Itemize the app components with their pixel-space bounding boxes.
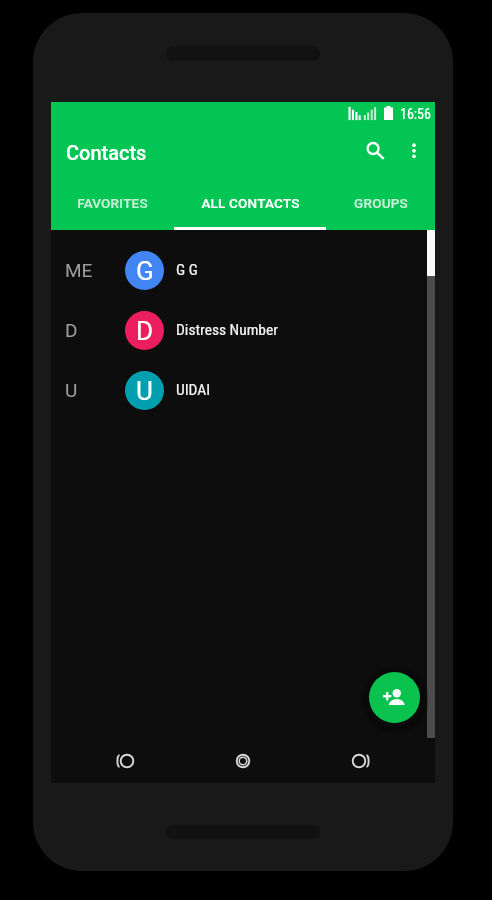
staticText: GROUPS (354, 195, 408, 211)
button[interactable]: Add contact (369, 672, 420, 723)
button[interactable]: D (51, 300, 435, 360)
staticText: UIDAI (176, 381, 211, 399)
button[interactable]: Search (350, 126, 396, 172)
button[interactable]: Back (107, 741, 147, 781)
staticText: U (136, 376, 153, 406)
button[interactable]: GROUPS (326, 182, 435, 230)
staticText: G (136, 256, 154, 286)
staticText: D (136, 316, 154, 346)
staticText: Distress Number (176, 321, 278, 339)
button[interactable]: ALL CONTACTS (174, 182, 326, 230)
button[interactable]: Recents (339, 741, 379, 781)
staticText: Contacts (66, 141, 147, 164)
button[interactable]: Home (223, 741, 263, 781)
button[interactable]: ME (51, 240, 435, 300)
staticText: FAVORITES (77, 195, 148, 211)
staticText: U (65, 379, 78, 401)
staticText: G G (176, 261, 198, 279)
button[interactable]: U (51, 360, 435, 420)
staticText: ALL CONTACTS (201, 195, 300, 211)
button[interactable]: More options (396, 133, 432, 177)
staticText: D (65, 319, 78, 341)
staticText: ME (65, 259, 93, 281)
staticText: 16:56 (400, 106, 431, 122)
button[interactable]: FAVORITES (51, 182, 174, 230)
